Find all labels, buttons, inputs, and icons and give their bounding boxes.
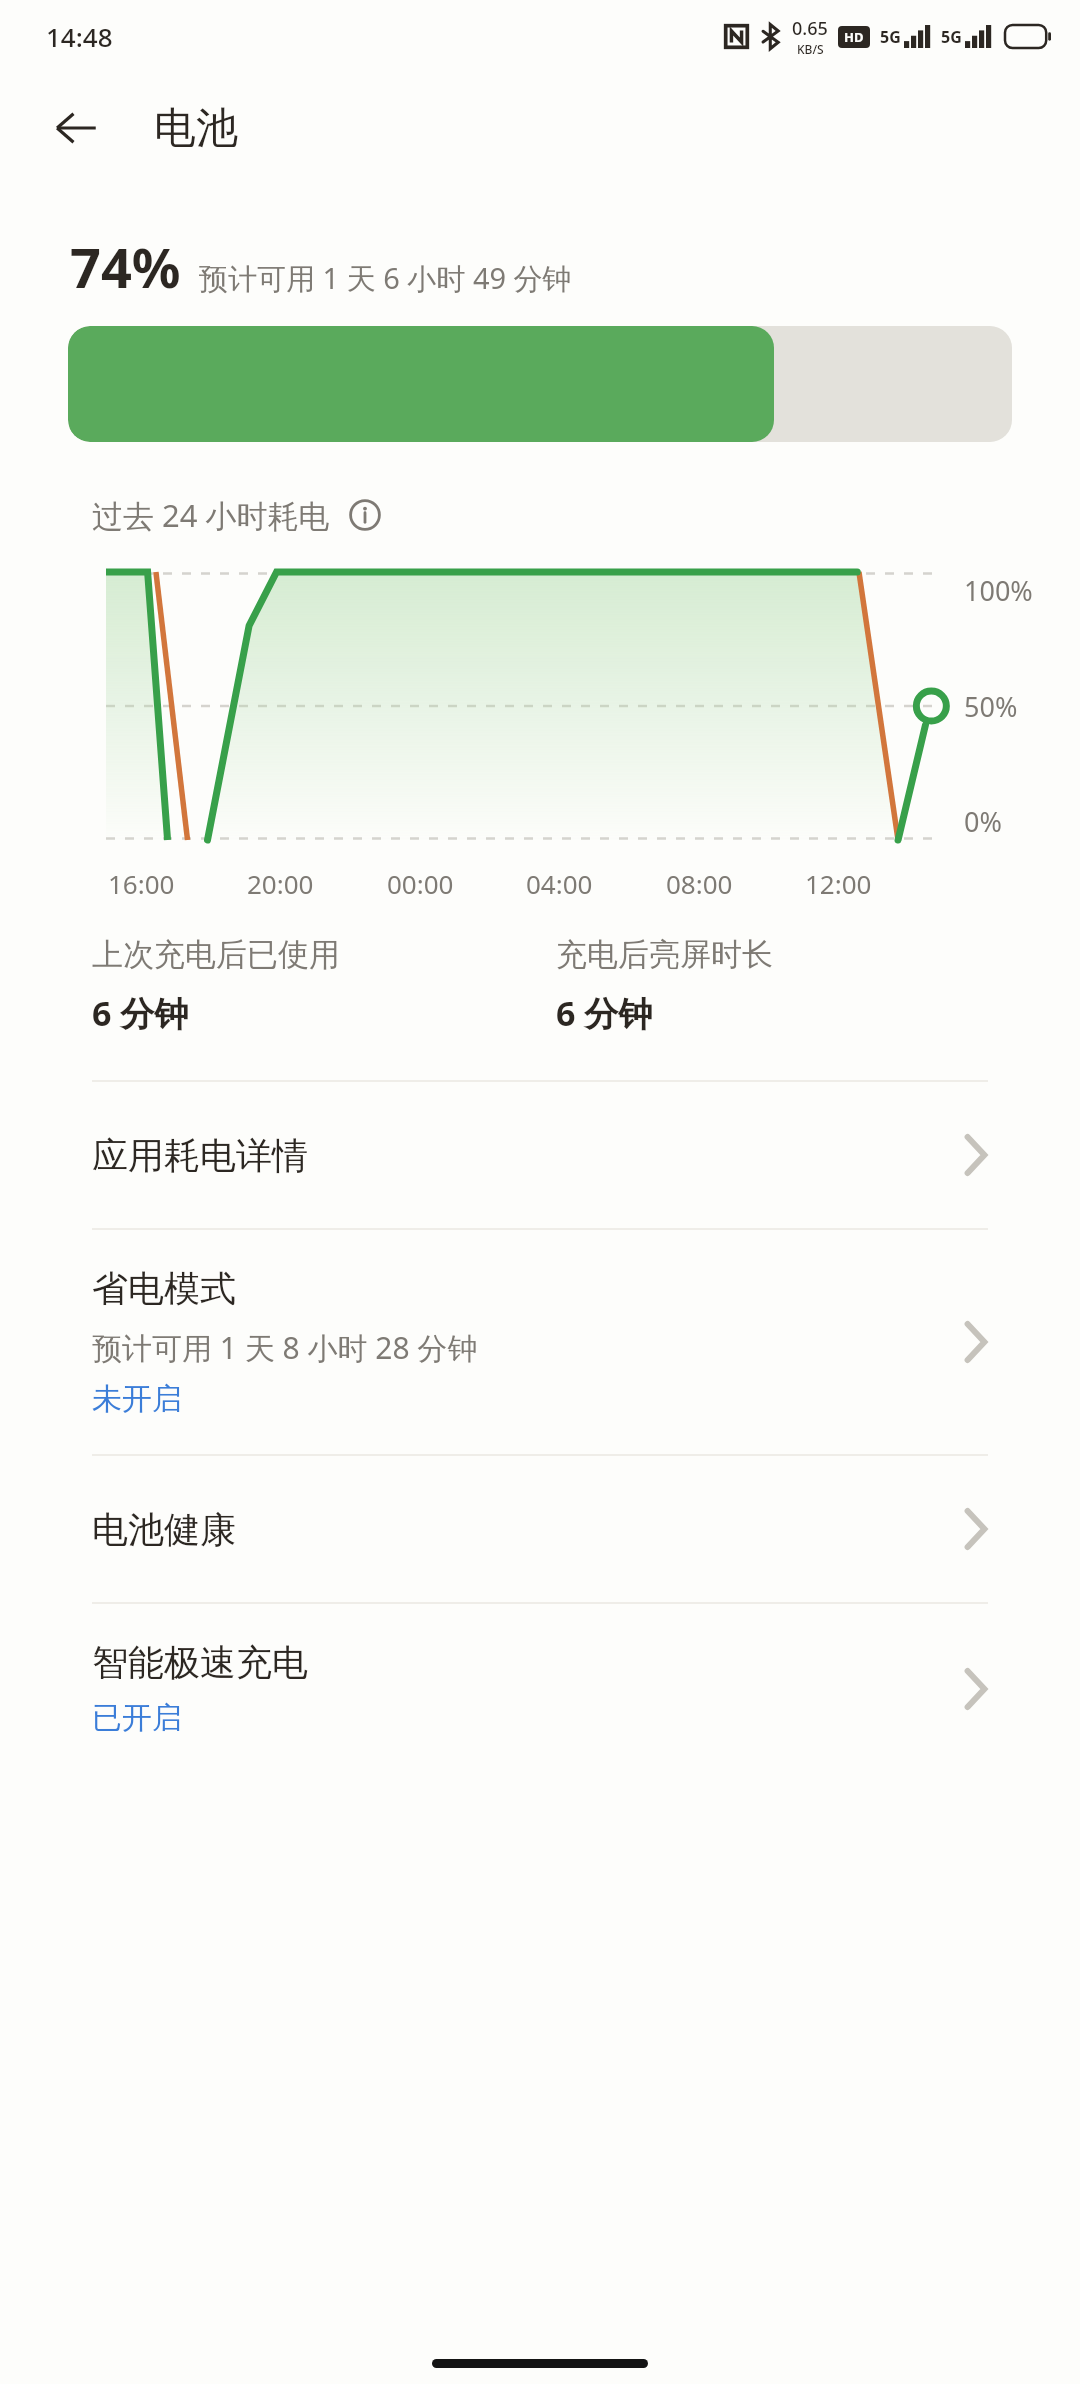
staticText: 6 分钟 [556,990,653,1036]
button[interactable]: 说明 [346,496,384,534]
button[interactable]: 省电模式 [0,1230,1080,1454]
staticText: 100% [964,572,1033,609]
staticText: 5G [941,26,962,48]
staticText: KB/S [797,41,824,57]
staticText: 5G [880,26,901,48]
staticText: 14:48 [46,19,113,54]
staticText: 充电后亮屏时长 [556,935,773,974]
button[interactable]: 应用耗电详情 [0,1082,1080,1228]
staticText: 电池 [154,102,238,155]
staticText: HD [844,28,864,46]
staticText: 08:00 [666,866,733,901]
staticText: 智能极速充电 [92,1640,308,1685]
staticText: 0% [964,803,1002,840]
staticText: 未开启 [92,1380,182,1418]
staticText: 过去 24 小时耗电 [92,494,330,536]
staticText: 16:00 [108,866,175,901]
staticText: 12:00 [805,866,872,901]
staticText: 20:00 [247,866,314,901]
staticText: 50% [964,688,1018,725]
staticText: 应用耗电详情 [92,1133,964,1178]
button[interactable]: 智能极速充电 [0,1604,1080,1773]
staticText: 0.65 [792,16,828,41]
staticText: 省电模式 [92,1266,236,1311]
staticText: 预计可用 1 天 8 小时 28 分钟 [92,1327,478,1368]
staticText: 00:00 [387,866,454,901]
staticText: 已开启 [92,1699,182,1737]
button[interactable]: 返回 [40,92,112,164]
staticText: 74% [70,230,181,304]
staticText: 6 分钟 [92,990,189,1036]
staticText: 电池健康 [92,1507,964,1552]
staticText: 04:00 [526,866,593,901]
staticText: 预计可用 1 天 6 小时 49 分钟 [199,258,572,298]
button[interactable]: 电池健康 [0,1456,1080,1602]
staticText: 上次充电后已使用 [92,935,340,974]
